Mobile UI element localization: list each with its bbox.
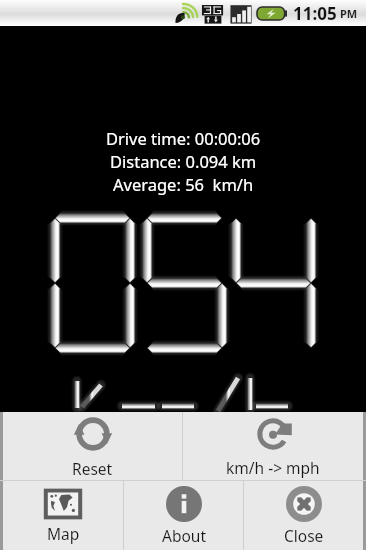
button[interactable]: Reset — [3, 412, 182, 480]
staticText: About — [162, 525, 206, 546]
staticText: Average: 56 km/h — [113, 173, 254, 195]
staticText: Reset — [72, 458, 113, 479]
staticText: Map — [47, 523, 80, 544]
staticText: Distance: 0.094 km — [110, 150, 257, 172]
staticText: Close — [284, 525, 324, 546]
button[interactable]: About — [124, 481, 243, 550]
staticText: 11:05 — [293, 2, 337, 25]
button[interactable]: Map — [3, 481, 123, 550]
staticText: PM — [340, 6, 358, 21]
button[interactable]: Close — [244, 481, 363, 550]
staticText: Drive time: 00:00:06 — [106, 127, 261, 149]
button[interactable]: km/h -> mph — [183, 412, 363, 480]
staticText: km/h -> mph — [226, 457, 320, 478]
